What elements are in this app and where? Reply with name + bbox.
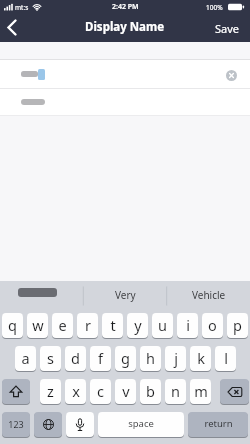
button[interactable]: d [65, 346, 86, 372]
staticText: mt:s [15, 3, 29, 12]
staticText: v [122, 381, 130, 401]
button[interactable]: u [152, 313, 173, 339]
staticText: y [134, 315, 142, 335]
staticText: o [208, 315, 217, 335]
staticText: a [21, 348, 30, 368]
button[interactable]: v [115, 379, 136, 405]
button[interactable]: space [98, 412, 184, 438]
button[interactable]: o [202, 313, 223, 339]
staticText: Display Name [85, 19, 165, 35]
staticText: x [72, 381, 80, 401]
staticText: t [110, 315, 116, 335]
button[interactable]: x [65, 379, 86, 405]
button[interactable]: Vehicle [167, 281, 250, 311]
staticText: l [224, 348, 228, 368]
button[interactable]: w [27, 313, 48, 339]
staticText: n [171, 381, 180, 401]
button[interactable] [220, 379, 249, 405]
staticText: 100% [206, 3, 223, 12]
staticText: z [47, 381, 54, 401]
button[interactable]: 123 [2, 412, 30, 438]
staticText: b [146, 381, 155, 401]
staticText: h [146, 348, 155, 368]
staticText: Very [115, 288, 136, 302]
staticText: s [47, 348, 54, 368]
staticText: d [71, 348, 80, 368]
button[interactable] [0, 14, 26, 42]
button[interactable]: k [190, 346, 211, 372]
staticText: 2:42 PM [112, 2, 139, 12]
staticText: i [186, 315, 190, 335]
button[interactable]: z [40, 379, 61, 405]
button[interactable]: Save [215, 21, 240, 36]
button[interactable] [66, 412, 94, 438]
button[interactable]: q [2, 313, 23, 339]
staticText: space [128, 417, 154, 430]
staticText: return [204, 417, 233, 430]
button[interactable]: Very [83, 281, 167, 311]
button[interactable]: b [140, 379, 161, 405]
staticText: g [121, 348, 130, 368]
button[interactable]: p [227, 313, 248, 339]
button[interactable]: h [140, 346, 161, 372]
button[interactable]: g [115, 346, 136, 372]
button[interactable] [2, 379, 30, 405]
staticText: p [233, 315, 242, 335]
button[interactable]: m [190, 379, 211, 405]
staticText: k [197, 348, 205, 368]
staticText: Vehicle [192, 288, 226, 302]
staticText: q [8, 315, 17, 335]
staticText: f [98, 348, 103, 368]
button[interactable] [0, 60, 250, 88]
button[interactable]: c [90, 379, 111, 405]
staticText: r [85, 315, 91, 335]
button[interactable]: y [127, 313, 148, 339]
staticText: j [174, 348, 178, 368]
staticText: w [32, 315, 44, 335]
staticText: 123 [8, 418, 24, 430]
staticText: Save [215, 21, 240, 36]
button[interactable]: r [77, 313, 98, 339]
button[interactable]: j [165, 346, 186, 372]
staticText: u [158, 315, 167, 335]
staticText: c [97, 381, 104, 401]
button[interactable]: n [165, 379, 186, 405]
button[interactable]: f [90, 346, 111, 372]
staticText: e [58, 315, 67, 335]
button[interactable]: l [215, 346, 236, 372]
button[interactable]: a [15, 346, 36, 372]
button[interactable]: t [102, 313, 123, 339]
button[interactable]: s [40, 346, 61, 372]
button[interactable] [0, 89, 250, 115]
button[interactable]: return [188, 412, 248, 438]
button[interactable] [221, 65, 241, 85]
staticText: m [194, 381, 208, 401]
button[interactable]: e [52, 313, 73, 339]
button[interactable] [34, 412, 62, 438]
button[interactable]: i [177, 313, 198, 339]
